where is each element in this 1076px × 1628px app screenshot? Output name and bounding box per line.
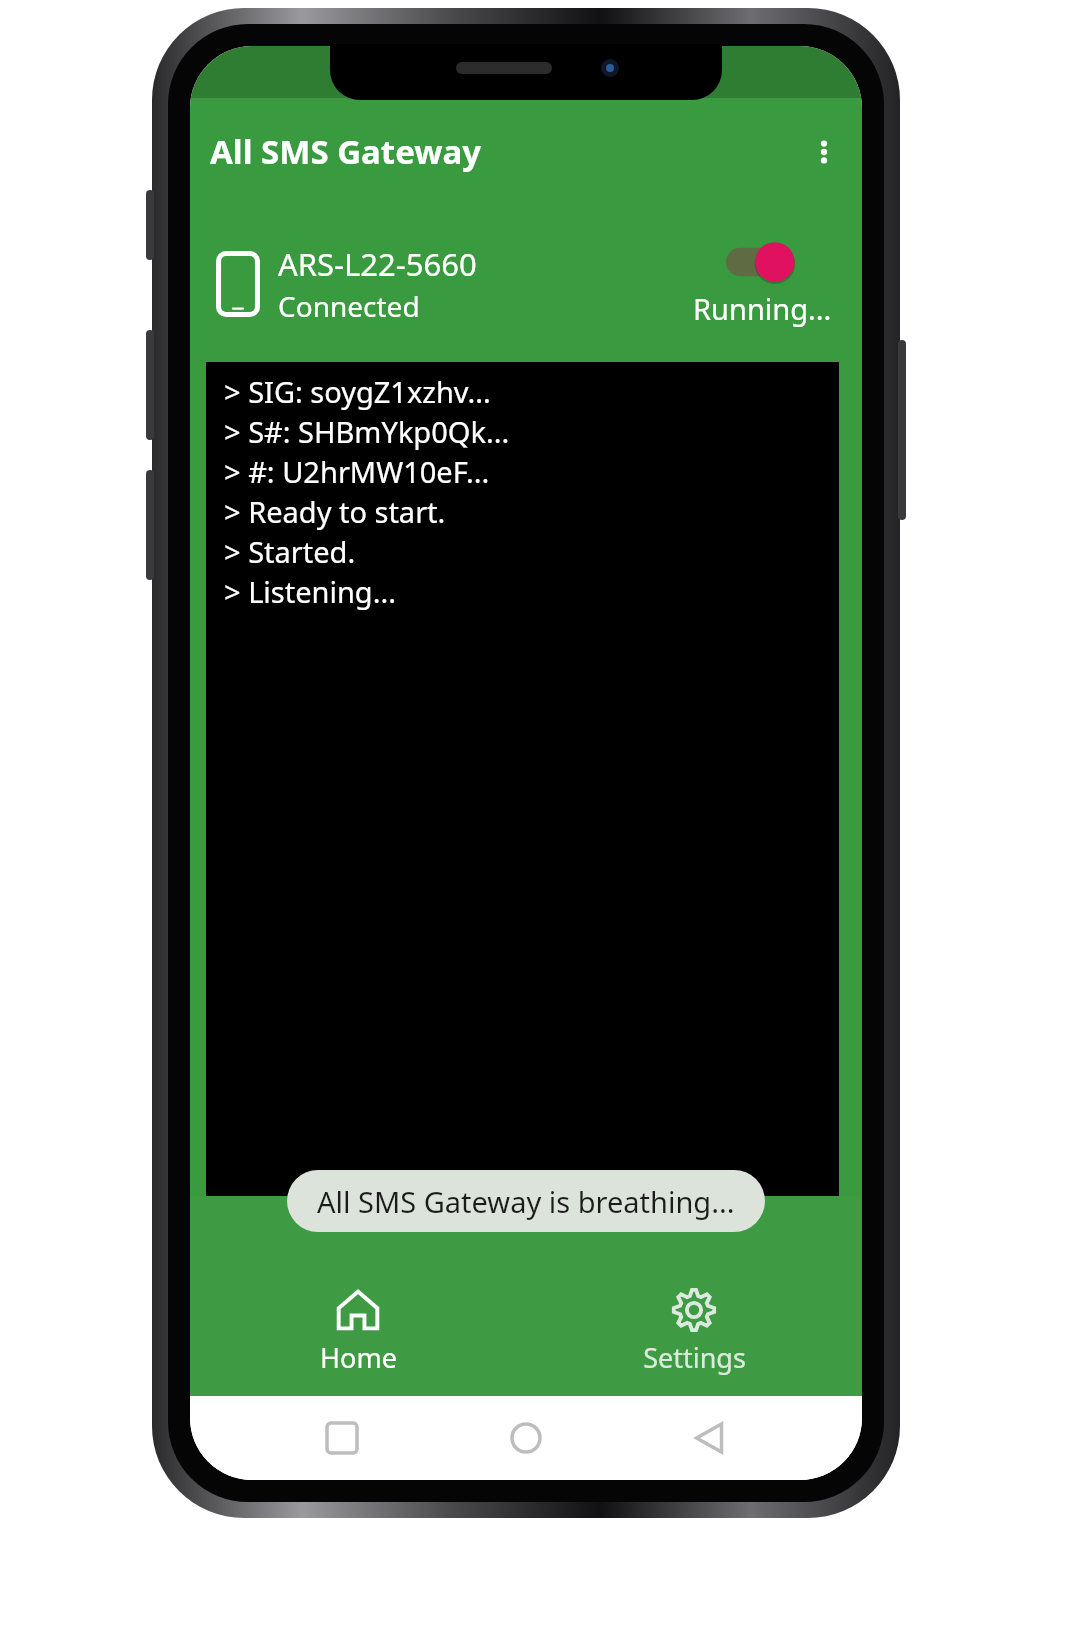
staticText: > Listening...: [224, 572, 396, 611]
button[interactable]: Settings: [526, 1281, 862, 1382]
staticText: > #: U2hrMW10eF...: [224, 452, 490, 491]
staticText: > SIG: soygZ1xzhv...: [224, 372, 491, 411]
button[interactable]: Home: [190, 1281, 526, 1382]
button[interactable]: Running...: [689, 239, 836, 328]
staticText: Connected: [278, 287, 420, 325]
staticText: > Started.: [224, 532, 356, 571]
staticText: All SMS Gateway is breathing...: [317, 1182, 735, 1221]
button[interactable]: Back: [678, 1406, 742, 1470]
button[interactable]: Home: [494, 1406, 558, 1470]
button[interactable]: More options: [796, 124, 852, 180]
staticText: Home: [320, 1339, 397, 1376]
staticText: ARS-L22-5660: [278, 243, 477, 285]
staticText: All SMS Gateway: [210, 129, 482, 174]
staticText: Settings: [643, 1339, 746, 1376]
staticText: > S#: SHBmYkp0Qk...: [224, 412, 510, 451]
button[interactable]: Recent apps: [310, 1406, 374, 1470]
staticText: > Ready to start.: [224, 492, 446, 531]
staticText: Running...: [693, 289, 832, 328]
